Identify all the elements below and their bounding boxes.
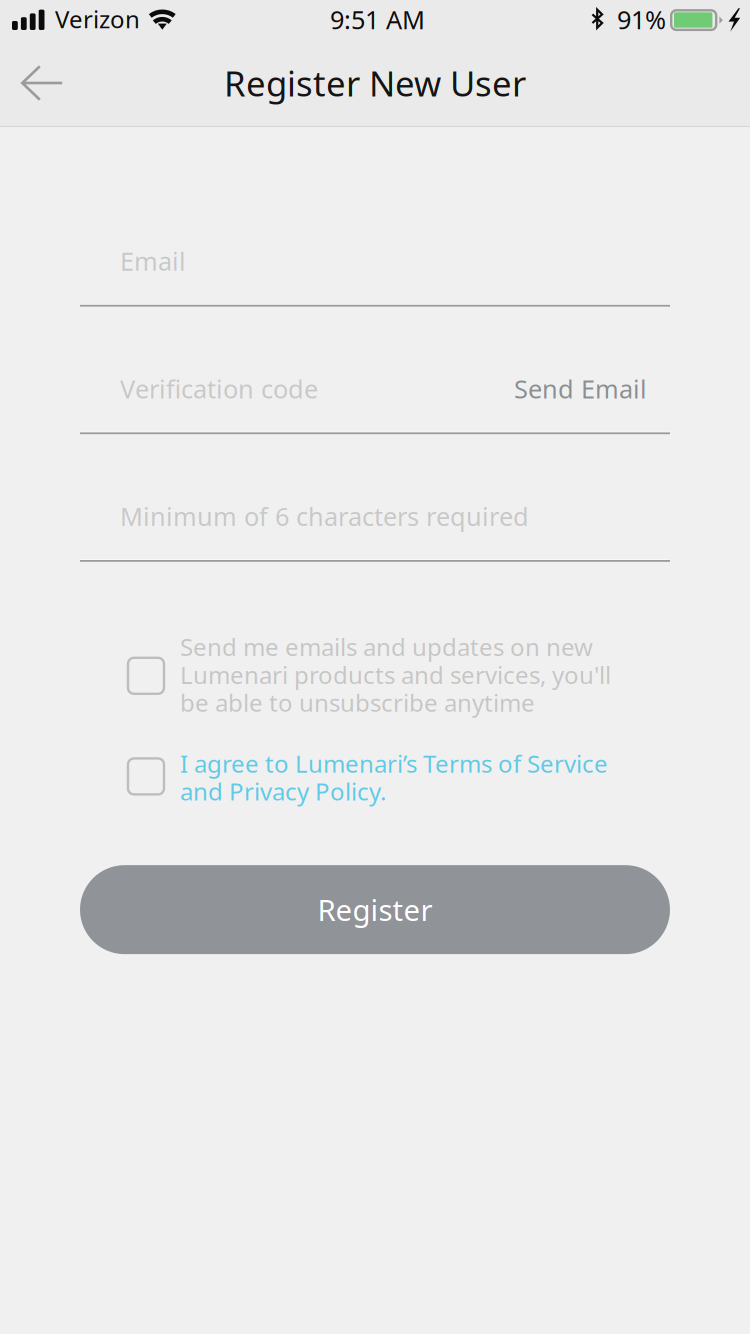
button[interactable]: Email xyxy=(80,240,670,282)
button[interactable]: Send Email xyxy=(498,368,670,410)
button[interactable]: Send me emails and updates on new xyxy=(128,631,611,718)
staticText: be able to unsubscribe anytime xyxy=(180,686,535,718)
staticText: I agree to Lumenari’s Terms of Service xyxy=(180,747,608,779)
staticText: 91% xyxy=(617,2,666,36)
staticText: 9:51 AM xyxy=(330,2,425,36)
staticText: Send Email xyxy=(514,372,647,405)
staticText: Minimum of 6 characters required xyxy=(120,499,529,533)
button[interactable]: Register xyxy=(80,865,670,954)
button[interactable]: Verification code xyxy=(80,368,498,410)
staticText: Register xyxy=(317,890,432,929)
button[interactable]: I agree to Lumenari’s Terms of Service xyxy=(128,747,608,807)
staticText: and Privacy Policy. xyxy=(180,775,386,807)
staticText: Lumenari products and services, you'll xyxy=(180,659,611,691)
staticText: Register New User xyxy=(224,60,526,106)
staticText: Email xyxy=(120,244,186,278)
staticText: Send me emails and updates on new xyxy=(180,631,593,663)
staticText: Verification code xyxy=(120,372,318,405)
staticText: Verizon xyxy=(55,3,140,35)
button[interactable]: Back xyxy=(0,51,63,115)
button[interactable]: Minimum of 6 characters required xyxy=(80,495,670,537)
